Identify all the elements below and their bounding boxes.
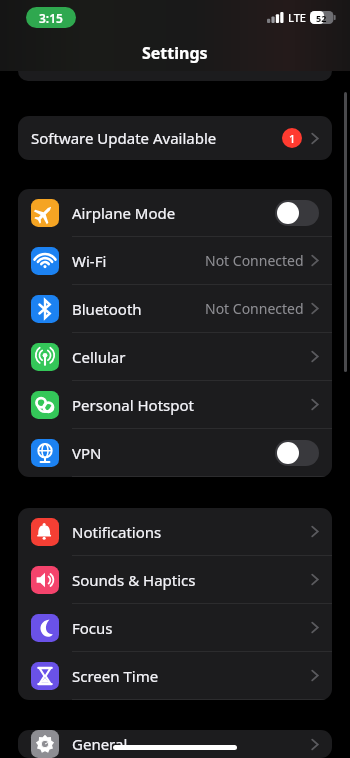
button[interactable]: Focus xyxy=(18,604,332,651)
button[interactable]: Airplane Mode xyxy=(18,189,332,236)
button[interactable]: Notifications xyxy=(18,508,332,555)
button[interactable]: Software Update Available xyxy=(18,116,332,160)
staticText: Wi-Fi xyxy=(72,251,205,271)
staticText: 3:15 xyxy=(39,10,63,26)
staticText: Settings xyxy=(142,42,208,64)
staticText: Notifications xyxy=(72,522,311,542)
button[interactable]: Personal Hotspot xyxy=(18,381,332,428)
staticText: Not Connected xyxy=(205,251,304,270)
staticText: Airplane Mode xyxy=(72,203,275,223)
staticText: 52 xyxy=(316,12,327,24)
staticText: Focus xyxy=(72,618,311,638)
button[interactable]: Sounds & Haptics xyxy=(18,556,332,603)
button[interactable]: Screen Time xyxy=(18,652,332,699)
button[interactable]: Bluetooth xyxy=(18,285,332,332)
button[interactable]: Cellular xyxy=(18,333,332,380)
button[interactable]: Toggle xyxy=(275,200,319,226)
button[interactable]: Wi-Fi xyxy=(18,237,332,284)
button[interactable]: Toggle xyxy=(275,440,319,466)
staticText: Bluetooth xyxy=(72,299,205,319)
staticText: 1 xyxy=(289,131,296,146)
staticText: VPN xyxy=(72,443,275,463)
button[interactable]: VPN xyxy=(18,429,332,476)
staticText: LTE xyxy=(288,10,306,25)
button[interactable]: General xyxy=(18,730,332,758)
staticText: Cellular xyxy=(72,347,311,367)
staticText: Screen Time xyxy=(72,666,311,686)
staticText: Sounds & Haptics xyxy=(72,570,311,590)
staticText: Personal Hotspot xyxy=(72,395,311,415)
staticText: Not Connected xyxy=(205,299,304,318)
staticText: Software Update Available xyxy=(31,128,282,148)
staticText: General xyxy=(72,734,311,754)
